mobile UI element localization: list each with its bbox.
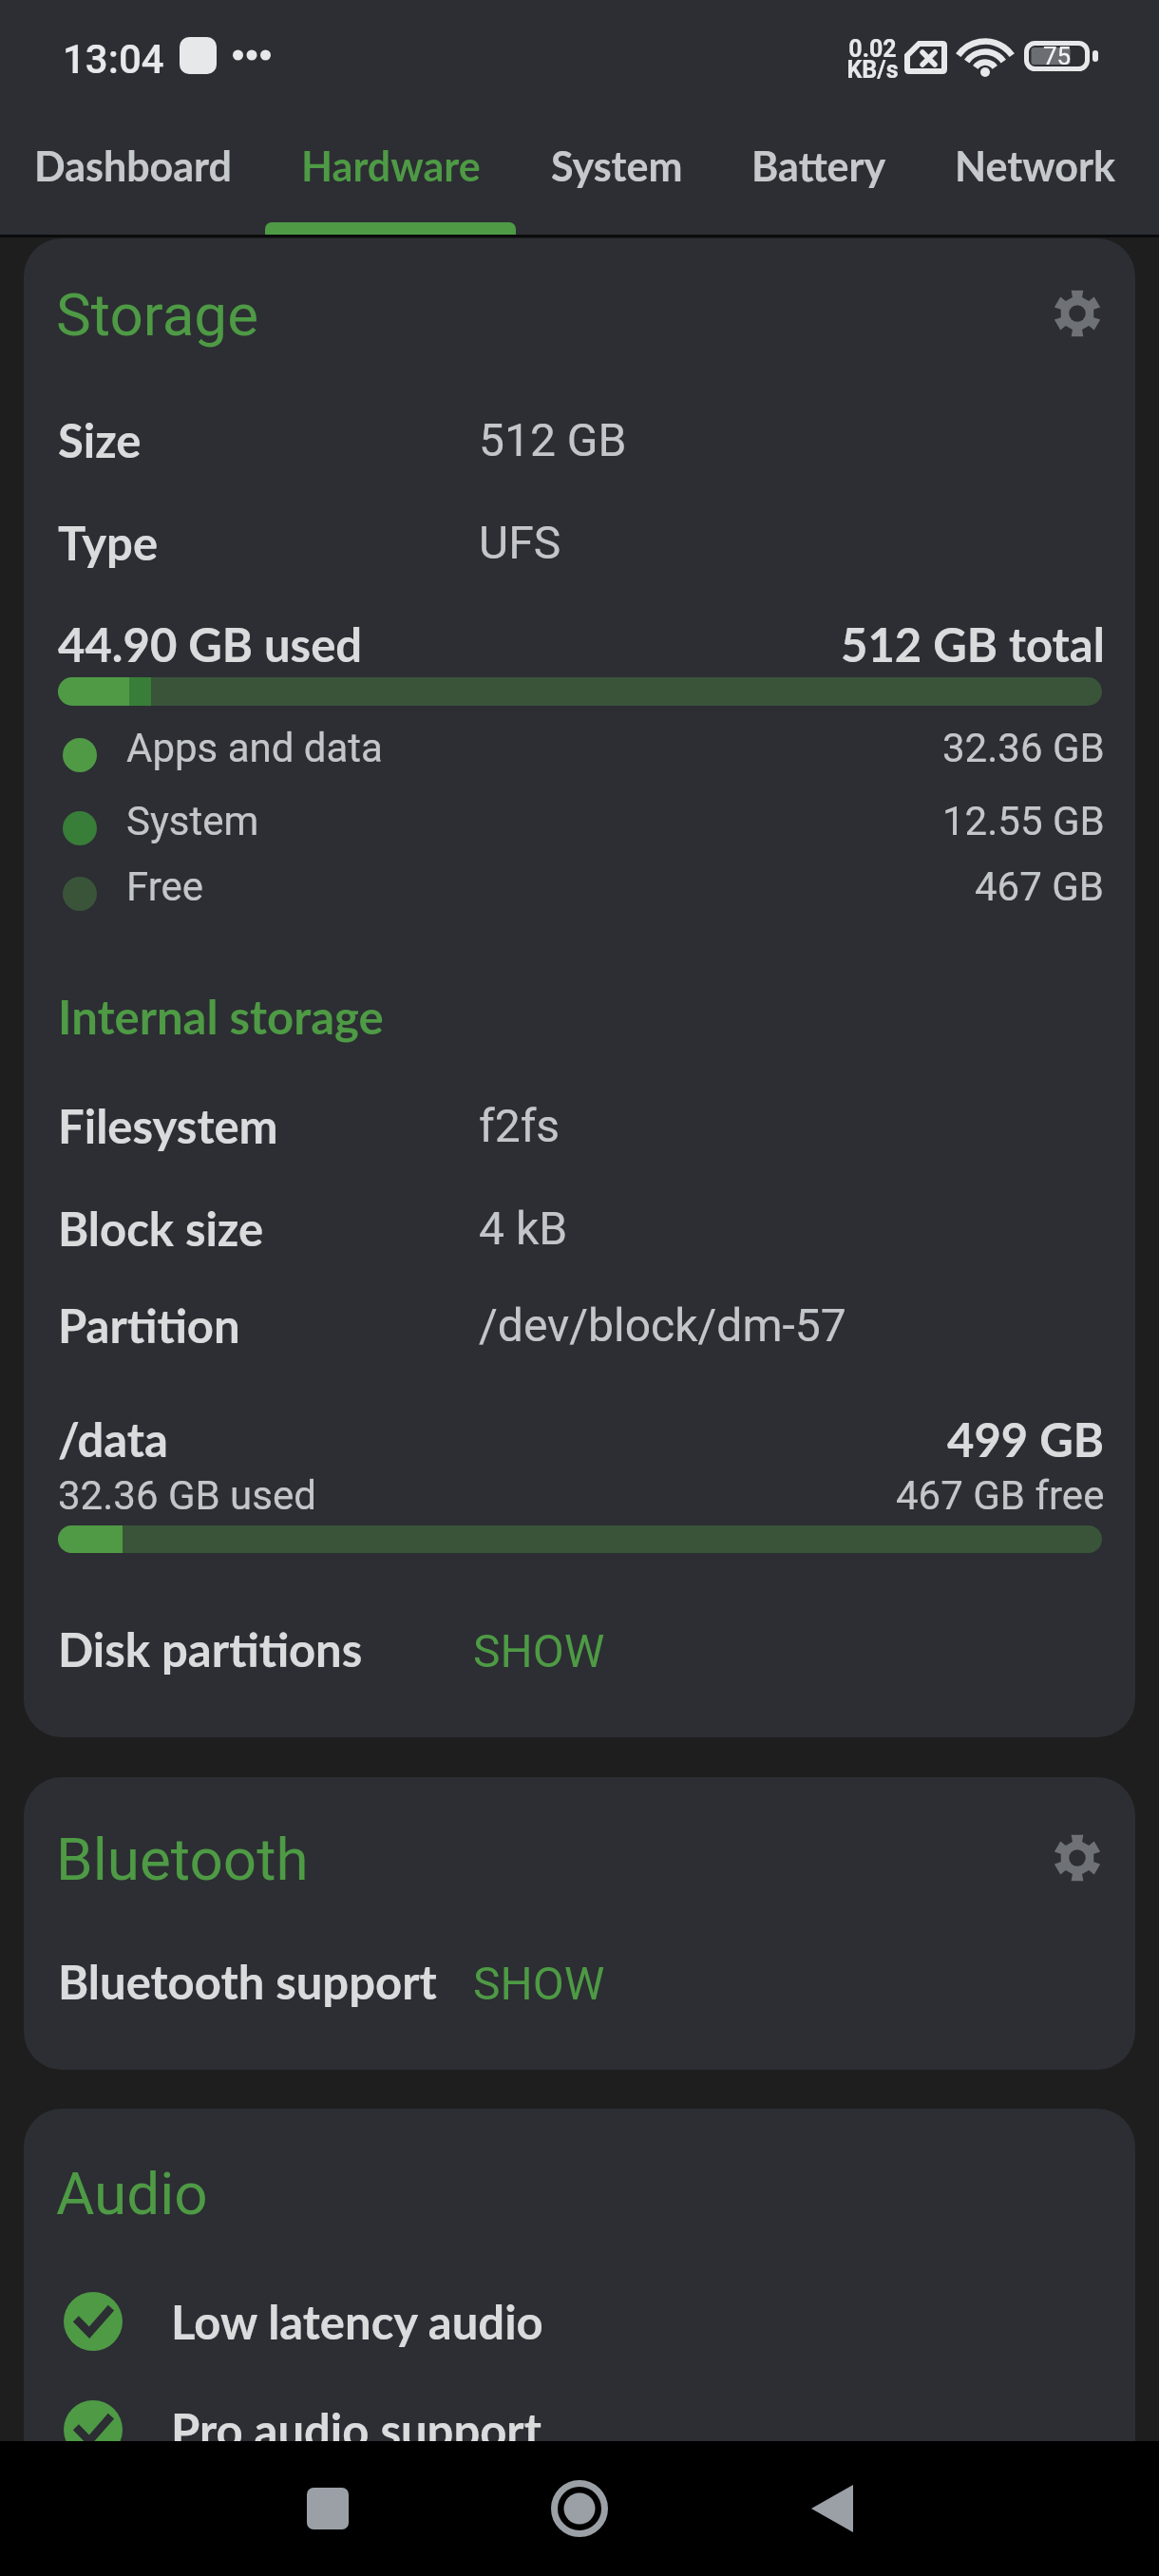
button[interactable]: Hardware [265, 120, 516, 235]
button[interactable]: Back [780, 2441, 884, 2576]
staticText: Disk partitions [58, 1621, 363, 1677]
staticText: SHOW [473, 1957, 605, 2010]
staticText: SHOW [473, 1624, 605, 1677]
staticText: 12.55 GB [942, 798, 1105, 844]
staticText: 44.90 GB used [58, 616, 841, 672]
staticText: Network [955, 142, 1116, 191]
staticText: Audio [56, 2159, 208, 2228]
staticText: 512 GB [479, 413, 627, 466]
staticText: Battery [751, 142, 886, 191]
button[interactable]: Audio [43, 2152, 451, 2234]
staticText: Apps and data [126, 725, 383, 771]
staticText: Bluetooth [56, 1825, 309, 1894]
staticText: 32.36 GB used [58, 1472, 896, 1519]
staticText: Low latency audio [171, 2294, 543, 2350]
staticText: Pro audio support [171, 2402, 541, 2458]
staticText: 4 kB [479, 1202, 568, 1255]
button[interactable]: Home [527, 2441, 632, 2576]
staticText: Partition [58, 1297, 240, 1354]
staticText: f2fs [479, 1099, 560, 1152]
staticText: 32.36 GB [942, 725, 1105, 771]
staticText: Internal storage [58, 989, 384, 1045]
staticText: 75 [1043, 42, 1072, 70]
button[interactable]: Bluetooth support [24, 1939, 1135, 2030]
staticText: 13:04 [63, 36, 164, 83]
button[interactable]: Pro audio support [24, 2382, 1135, 2477]
button[interactable]: Storage [43, 274, 451, 355]
staticText: 467 GB [975, 863, 1105, 910]
staticText: Hardware [301, 142, 481, 191]
button[interactable]: Dashboard [1, 120, 265, 235]
staticText: 499 GB [947, 1411, 1105, 1468]
button[interactable]: System [516, 120, 717, 235]
staticText: 512 GB total [841, 616, 1105, 672]
staticText: System [126, 798, 259, 844]
staticText: /dev/block/dm-57 [479, 1298, 846, 1352]
staticText: Filesystem [58, 1098, 278, 1154]
staticText: Dashboard [34, 142, 232, 191]
staticText: /data [58, 1411, 947, 1468]
button[interactable]: Network [921, 120, 1150, 235]
button[interactable]: Recent apps [275, 2441, 380, 2576]
staticText: UFS [479, 516, 561, 569]
button[interactable]: Storage settings [1044, 280, 1111, 347]
button[interactable]: Disk partitions [24, 1606, 1135, 1697]
button[interactable]: Battery [717, 120, 921, 235]
button[interactable]: Bluetooth [43, 1818, 451, 1900]
staticText: 467 GB free [896, 1472, 1105, 1519]
button[interactable]: Low latency audio [24, 2274, 1135, 2369]
staticText: Free [126, 863, 204, 910]
staticText: Bluetooth support [58, 1954, 437, 2010]
staticText: Size [58, 412, 142, 468]
staticText: Block size [58, 1201, 264, 1257]
staticText: System [551, 142, 683, 191]
staticText: 0.02 KB/s [846, 35, 899, 84]
button[interactable]: Bluetooth settings [1044, 1825, 1111, 1891]
staticText: Storage [56, 280, 259, 350]
staticText: Type [58, 515, 159, 571]
